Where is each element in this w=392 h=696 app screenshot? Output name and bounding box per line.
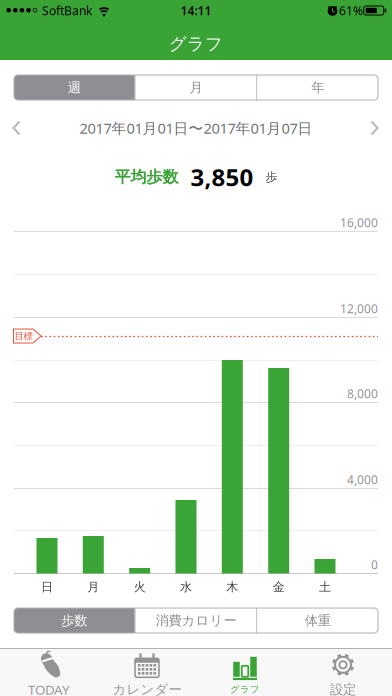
staticText: SoftBank [42, 2, 92, 18]
button[interactable]: 設定 [294, 651, 392, 696]
staticText: 木 [226, 580, 238, 594]
button[interactable]: 次の週 [364, 114, 385, 141]
staticText: 3,850 [190, 161, 253, 193]
button[interactable]: グラフ [196, 651, 294, 696]
staticText: 日 [41, 580, 53, 594]
staticText: 体重 [305, 612, 331, 629]
staticText: 16,000 [340, 214, 378, 230]
staticText: 歩 [265, 170, 277, 184]
staticText: 土 [319, 580, 331, 594]
staticText: 月 [189, 79, 202, 96]
staticText: TODAY [28, 681, 70, 696]
staticText: 2017年01月01日〜2017年01月07日 [79, 118, 312, 138]
staticText: 平均歩数 [114, 167, 178, 187]
staticText: 14:11 [180, 2, 211, 18]
staticText: 設定 [330, 681, 356, 696]
staticText: グラフ [230, 684, 260, 695]
button[interactable]: 年 [257, 75, 378, 100]
staticText: 8,000 [347, 385, 378, 401]
staticText: 歩数 [61, 612, 87, 629]
button[interactable]: カレンダー [98, 651, 196, 696]
button[interactable]: 月 [136, 75, 256, 100]
button[interactable]: 前の週 [6, 114, 27, 141]
staticText: 目標 [14, 330, 32, 342]
staticText: 月 [87, 580, 99, 594]
button[interactable]: 週 [14, 75, 135, 100]
staticText: 消費カロリー [155, 612, 236, 629]
staticText: 0 [371, 556, 378, 572]
staticText: カレンダー [112, 681, 181, 696]
staticText: 金 [273, 580, 285, 594]
staticText: 4,000 [347, 471, 378, 487]
button[interactable]: TODAY [0, 651, 98, 696]
staticText: 61% [339, 2, 363, 18]
button[interactable]: 歩数 [14, 608, 135, 633]
staticText: グラフ [169, 33, 223, 55]
button[interactable]: 体重 [257, 608, 378, 633]
staticText: 水 [180, 580, 192, 594]
staticText: 年 [311, 79, 324, 96]
button[interactable]: 消費カロリー [136, 608, 256, 633]
staticText: 12,000 [340, 300, 378, 316]
staticText: 週 [68, 79, 81, 96]
staticText: 火 [134, 580, 146, 594]
